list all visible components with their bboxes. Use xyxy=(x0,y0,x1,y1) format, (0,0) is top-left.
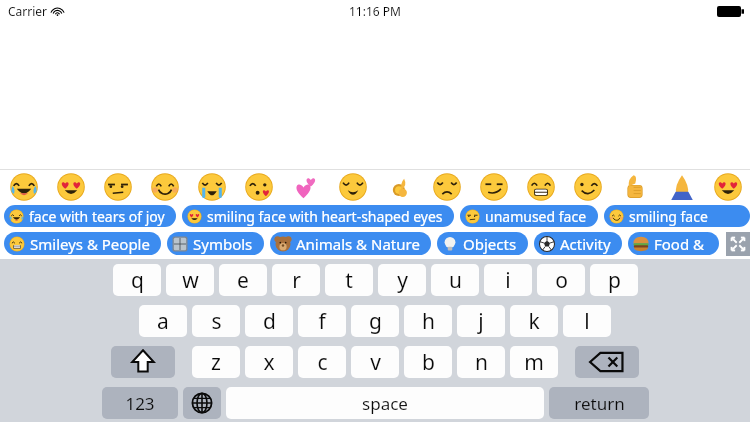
staticText: Animals & Nature xyxy=(296,234,420,254)
button[interactable]: face with tears of joy xyxy=(4,205,176,227)
staticText: face with tears of joy xyxy=(29,207,165,226)
button[interactable]: ok hand sign xyxy=(376,170,423,204)
button[interactable]: z xyxy=(192,346,240,378)
button[interactable]: k xyxy=(510,305,558,337)
button[interactable]: pensive face xyxy=(423,170,470,204)
button[interactable]: weary face xyxy=(329,170,376,204)
button[interactable]: t xyxy=(325,264,373,296)
button[interactable]: Shift xyxy=(111,346,175,378)
button[interactable]: c xyxy=(298,346,346,378)
button[interactable]: n xyxy=(457,346,505,378)
button[interactable]: y xyxy=(378,264,426,296)
staticText: Objects xyxy=(463,234,517,254)
staticText: k xyxy=(528,307,540,336)
staticText: 11:16 PM xyxy=(349,3,401,19)
button[interactable]: b xyxy=(404,346,452,378)
staticText: h xyxy=(422,307,435,336)
button[interactable]: a xyxy=(139,305,187,337)
staticText: t xyxy=(345,266,353,295)
button[interactable]: l xyxy=(563,305,611,337)
staticText: x xyxy=(263,348,275,377)
staticText: 123 xyxy=(125,392,155,415)
button[interactable]: more emoji xyxy=(705,170,750,204)
button[interactable]: smiling face with smiling eyes xyxy=(604,205,750,227)
button[interactable]: s xyxy=(192,305,240,337)
button[interactable]: j xyxy=(457,305,505,337)
button[interactable]: o xyxy=(537,264,585,296)
staticText: n xyxy=(475,348,488,377)
button[interactable]: unamused face xyxy=(94,170,141,204)
button[interactable]: h xyxy=(404,305,452,337)
button[interactable]: u xyxy=(431,264,479,296)
staticText: w xyxy=(182,266,199,295)
button[interactable]: r xyxy=(272,264,320,296)
staticText: return xyxy=(574,392,625,415)
button[interactable]: loudly crying face xyxy=(188,170,235,204)
button[interactable]: q xyxy=(113,264,161,296)
staticText: s xyxy=(211,307,222,336)
button[interactable]: w xyxy=(166,264,214,296)
staticText: f xyxy=(318,307,326,336)
button[interactable]: Smileys & People xyxy=(4,232,161,255)
staticText: Activity xyxy=(560,234,611,254)
staticText: l xyxy=(584,307,590,336)
button[interactable]: smiling face with heart-shaped eyes xyxy=(182,205,454,227)
staticText: q xyxy=(131,266,144,295)
staticText: e xyxy=(237,266,249,295)
button[interactable]: d xyxy=(245,305,293,337)
staticText: Food & xyxy=(654,234,708,254)
staticText: b xyxy=(422,348,435,377)
button[interactable]: Symbols xyxy=(167,232,264,255)
button[interactable]: e xyxy=(219,264,267,296)
staticText: v xyxy=(370,348,381,377)
staticText: space xyxy=(362,392,408,415)
staticText: d xyxy=(263,307,276,336)
button[interactable]: smirking face xyxy=(470,170,517,204)
button[interactable]: face with tears of joy xyxy=(0,170,47,204)
staticText: g xyxy=(369,307,382,336)
staticText: smiling face with heart-shaped eyes xyxy=(207,207,443,226)
staticText: Symbols xyxy=(193,234,253,254)
button[interactable]: g xyxy=(351,305,399,337)
staticText: p xyxy=(608,266,621,295)
button[interactable]: thumbs up sign xyxy=(611,170,658,204)
button[interactable]: face throwing a kiss xyxy=(235,170,282,204)
staticText: y xyxy=(397,266,408,295)
button[interactable]: space xyxy=(226,387,544,419)
button[interactable]: unamused face xyxy=(460,205,598,227)
staticText: a xyxy=(157,307,169,336)
button[interactable]: grinning face xyxy=(517,170,564,204)
staticText: unamused face xyxy=(485,207,587,226)
staticText: z xyxy=(211,348,221,377)
button[interactable]: Backspace xyxy=(575,346,639,378)
button[interactable]: v xyxy=(351,346,399,378)
button[interactable]: x xyxy=(245,346,293,378)
button[interactable]: return xyxy=(549,387,649,419)
button[interactable]: m xyxy=(510,346,558,378)
staticText: c xyxy=(317,348,328,377)
staticText: r xyxy=(292,266,301,295)
button[interactable]: smiling face with smiling eyes xyxy=(141,170,188,204)
button[interactable]: smiling face with heart-shaped eyes xyxy=(47,170,94,204)
button[interactable]: p xyxy=(590,264,638,296)
staticText: Smileys & People xyxy=(30,234,150,254)
button[interactable]: Food & xyxy=(628,232,719,255)
button[interactable]: f xyxy=(298,305,346,337)
button[interactable]: Next keyboard xyxy=(183,387,221,419)
staticText: m xyxy=(524,348,544,377)
button[interactable]: Animals & Nature xyxy=(270,232,431,255)
button[interactable]: Objects xyxy=(437,232,528,255)
staticText: u xyxy=(449,266,462,295)
button[interactable]: Expand xyxy=(726,232,750,256)
staticText: Carrier xyxy=(8,3,48,19)
button[interactable]: person with folded hands xyxy=(658,170,705,204)
button[interactable]: two hearts xyxy=(282,170,329,204)
staticText: i xyxy=(505,266,511,295)
button[interactable]: Activity xyxy=(534,232,622,255)
button[interactable]: winking face xyxy=(564,170,611,204)
button[interactable]: 123 xyxy=(102,387,178,419)
button[interactable]: i xyxy=(484,264,532,296)
staticText: j xyxy=(478,307,484,336)
staticText: o xyxy=(555,266,568,295)
staticText: smiling face with smiling eyes xyxy=(629,207,739,226)
